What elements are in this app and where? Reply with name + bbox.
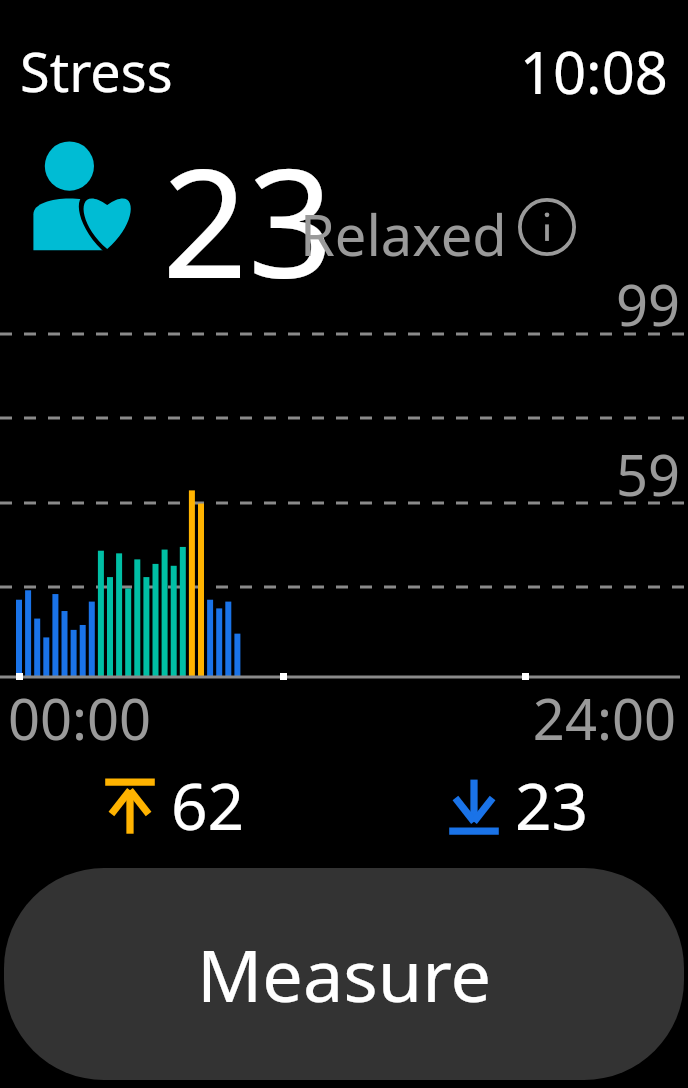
staticText: 62 (171, 762, 245, 849)
button[interactable]: Info about stress levels (518, 198, 576, 256)
staticText: 10:08 (0, 32, 668, 111)
staticText: 59 (0, 436, 680, 512)
button[interactable]: Measure (4, 868, 684, 1080)
staticText: Relaxed (300, 196, 507, 272)
staticText: 23 (162, 118, 334, 322)
staticText: Stress (20, 34, 173, 108)
staticText: 00:00 (8, 680, 152, 756)
staticText: 23 (515, 762, 589, 849)
staticText: 99 (0, 266, 680, 342)
staticText: 24:00 (0, 680, 676, 756)
staticText: Measure (197, 925, 492, 1023)
